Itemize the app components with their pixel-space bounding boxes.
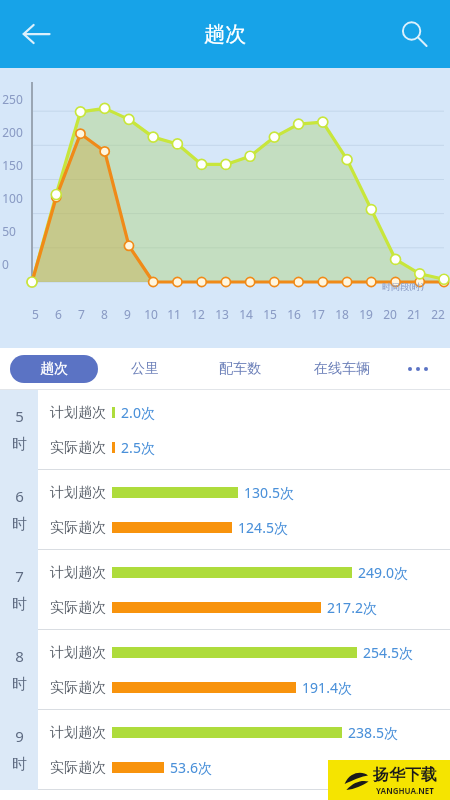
staticText: 50 (2, 223, 16, 239)
button[interactable]: 配车数 (213, 354, 267, 384)
button[interactable]: 在线车辆 (308, 354, 376, 384)
staticText: 在线车辆 (314, 360, 370, 378)
staticText: 19 (359, 306, 373, 322)
staticText: 2.5次 (121, 438, 155, 457)
staticText: 计划趟次 (50, 724, 106, 742)
staticText: 实际趟次 (50, 439, 106, 457)
staticText: 公里 (131, 360, 159, 378)
staticText: 实际趟次 (50, 599, 106, 617)
button[interactable]: 7 (0, 550, 450, 630)
staticText: 5 (15, 406, 24, 426)
staticText: 17 (311, 306, 325, 322)
staticText: 200 (2, 124, 23, 140)
staticText: 8 (101, 306, 108, 322)
staticText: 217.2次 (327, 598, 377, 617)
button[interactable]: More tabs (396, 348, 440, 390)
staticText: YANGHUA.NET (376, 785, 434, 796)
staticText: 16 (287, 306, 301, 322)
staticText: 238.5次 (348, 723, 398, 742)
staticText: 9 (124, 306, 131, 322)
staticText: 配车数 (219, 360, 261, 378)
staticText: 18 (335, 306, 349, 322)
staticText: 时 (12, 515, 27, 534)
button[interactable]: 9 (0, 710, 450, 790)
staticText: 计划趟次 (50, 484, 106, 502)
staticText: 趟次 (204, 21, 246, 47)
staticText: 扬华下载 (373, 765, 437, 785)
staticText: 时 (12, 435, 27, 454)
staticText: 150 (2, 157, 23, 173)
staticText: 7 (15, 566, 24, 586)
staticText: 15 (263, 306, 277, 322)
staticText: 计划趟次 (50, 404, 106, 422)
staticText: 0 (2, 256, 9, 272)
button[interactable]: 5 (0, 390, 450, 470)
staticText: 254.5次 (363, 643, 413, 662)
staticText: 8 (15, 646, 24, 666)
staticText: 时间段(时) (382, 280, 424, 292)
staticText: 时 (12, 675, 27, 694)
staticText: 实际趟次 (50, 519, 106, 537)
staticText: 191.4次 (302, 678, 352, 697)
staticText: 249.0次 (358, 563, 408, 582)
staticText: 12 (191, 306, 205, 322)
staticText: 7 (78, 306, 85, 322)
staticText: 11 (167, 306, 181, 322)
button[interactable]: Search (388, 8, 440, 60)
staticText: 130.5次 (244, 483, 294, 502)
staticText: 时 (12, 755, 27, 774)
staticText: 6 (55, 306, 62, 322)
staticText: 计划趟次 (50, 644, 106, 662)
staticText: 22 (431, 306, 445, 322)
button[interactable]: 趟次 (10, 355, 98, 383)
staticText: 53.6次 (170, 758, 212, 777)
button[interactable]: 8 (0, 630, 450, 710)
staticText: 250 (2, 91, 23, 107)
staticText: 100 (2, 190, 23, 206)
staticText: 13 (215, 306, 229, 322)
staticText: 5 (32, 306, 39, 322)
staticText: 实际趟次 (50, 759, 106, 777)
staticText: 计划趟次 (50, 564, 106, 582)
staticText: 2.0次 (121, 403, 155, 422)
staticText: 124.5次 (238, 518, 288, 537)
button[interactable]: 6 (0, 470, 450, 550)
staticText: 时 (12, 595, 27, 614)
staticText: 趟次 (40, 360, 68, 378)
staticText: 实际趟次 (50, 679, 106, 697)
button[interactable]: Back (10, 8, 62, 60)
button[interactable]: 公里 (125, 354, 165, 384)
staticText: 10 (144, 306, 158, 322)
staticText: 21 (407, 306, 421, 322)
staticText: 20 (383, 306, 397, 322)
staticText: 9 (15, 726, 24, 746)
staticText: 6 (15, 486, 24, 506)
staticText: 14 (239, 306, 253, 322)
